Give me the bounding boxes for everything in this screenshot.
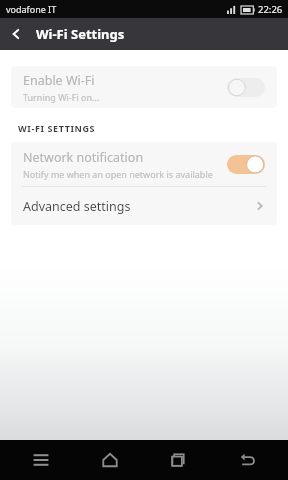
button[interactable]: Menu bbox=[13, 440, 69, 480]
button[interactable]: Toggle on bbox=[227, 155, 265, 174]
button[interactable]: Advanced settings bbox=[11, 187, 277, 225]
button[interactable]: Home bbox=[82, 440, 138, 480]
staticText: Network notification bbox=[23, 149, 144, 166]
staticText: 22:26 bbox=[258, 3, 283, 16]
staticText: Wi-Fi Settings bbox=[36, 25, 125, 43]
staticText: Advanced settings bbox=[23, 198, 255, 215]
staticText: Notify me when an open network is availa… bbox=[23, 168, 213, 180]
staticText: Enable Wi-Fi bbox=[23, 72, 95, 89]
button[interactable]: Back bbox=[219, 440, 275, 480]
staticText: Turning Wi-Fi on... bbox=[23, 91, 100, 103]
staticText: WI-FI SETTINGS bbox=[18, 122, 96, 134]
button[interactable]: Toggle off bbox=[227, 78, 265, 97]
button[interactable]: Recents bbox=[150, 440, 206, 480]
button[interactable]: Back bbox=[0, 18, 32, 50]
button[interactable]: Enable Wi-Fi bbox=[11, 66, 277, 108]
staticText: vodafone IT bbox=[6, 3, 57, 15]
button[interactable]: Network notification bbox=[11, 142, 277, 186]
